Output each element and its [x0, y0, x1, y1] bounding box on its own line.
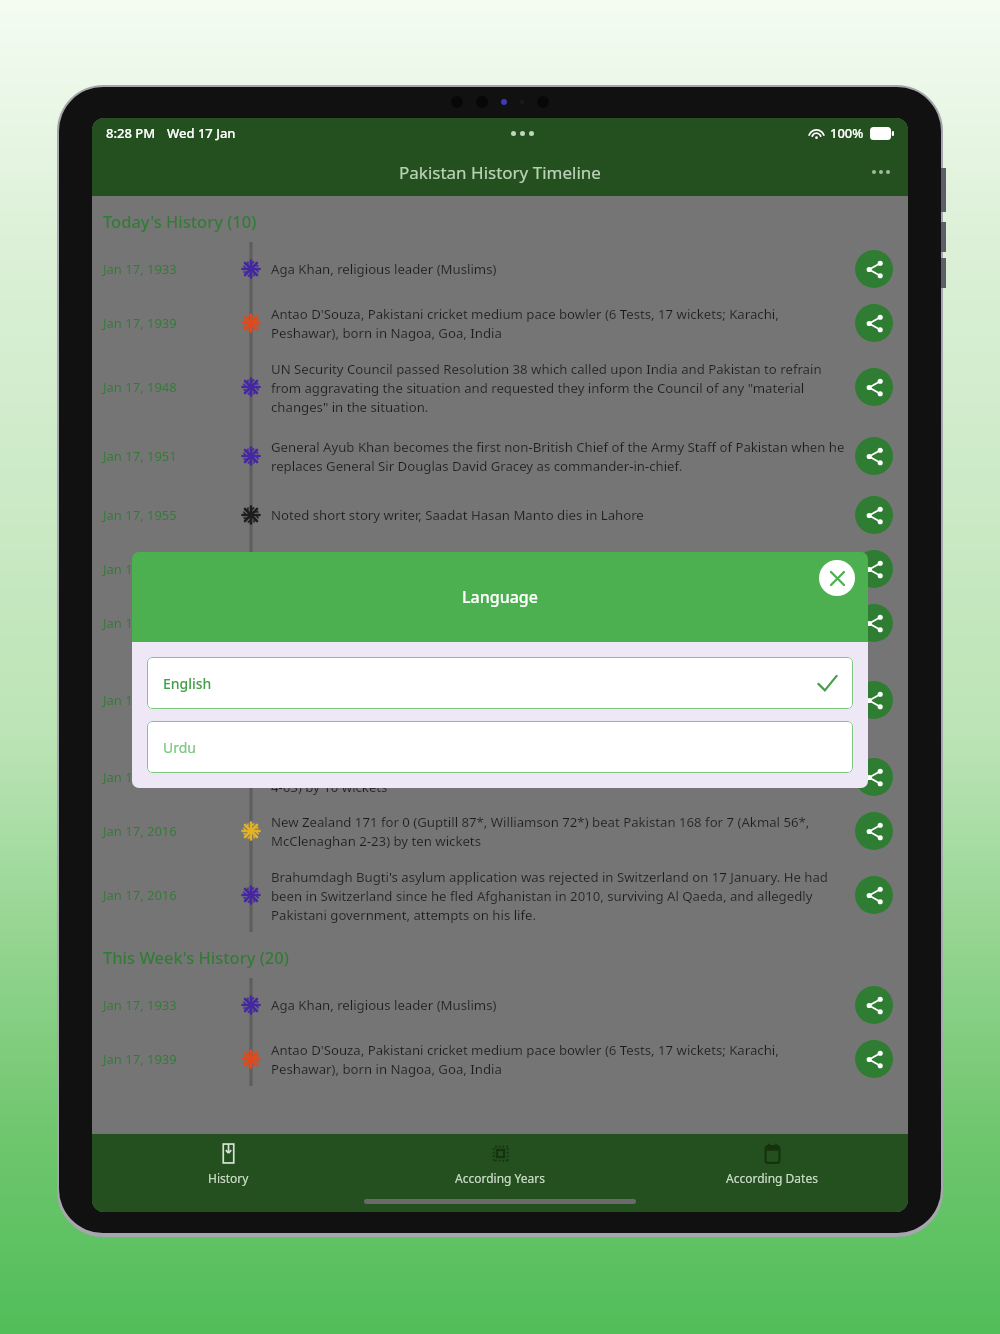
button[interactable]: Share	[855, 437, 893, 475]
staticText: Antao D'Souza, Pakistani cricket medium …	[271, 1041, 845, 1077]
staticText: 8:28 PM	[106, 124, 156, 142]
button[interactable]: Share	[855, 812, 893, 850]
staticText: English	[163, 674, 212, 693]
button[interactable]: Jan 17, 1939	[92, 296, 908, 350]
staticText: This Week's History (20)	[103, 946, 289, 968]
staticText: Jan 17, 1939	[103, 1050, 177, 1068]
button[interactable]: Share	[855, 368, 893, 406]
button[interactable]: History	[92, 1134, 364, 1190]
button[interactable]: Jan 17, 1948	[92, 350, 908, 424]
staticText: Noted short story writer, Saadat Hasan M…	[271, 506, 644, 524]
staticText: Jan 17, 1951	[103, 447, 177, 465]
button[interactable]: Share	[855, 304, 893, 342]
staticText: 100%	[830, 124, 864, 142]
staticText: Jan 17, 1933	[103, 996, 177, 1014]
button[interactable]: Share	[855, 876, 893, 914]
button[interactable]: Jan 17, 1933	[92, 978, 908, 1032]
button[interactable]: Share	[855, 1040, 893, 1078]
button[interactable]: Share	[855, 986, 893, 1024]
staticText: General Ayub Khan becomes the first non-…	[271, 438, 845, 474]
staticText: Brahumdagh Bugti's asylum application wa…	[271, 868, 845, 923]
staticText: Jan 17, 1939	[103, 314, 177, 332]
staticText: Language	[462, 586, 538, 608]
staticText: According Years	[455, 1170, 545, 1186]
staticText: Jan 17, 2016	[103, 822, 177, 840]
staticText: Jan 17, 1955	[103, 506, 177, 524]
button[interactable]: More options	[864, 162, 898, 182]
button[interactable]: Share	[855, 250, 893, 288]
staticText: Jan 17, 1948	[103, 378, 177, 396]
button[interactable]: Jan 17, 1995	[92, 650, 908, 750]
button[interactable]: Jan 17, 2012	[92, 750, 908, 804]
button[interactable]: Jan 17, 1951	[92, 424, 908, 488]
staticText: Aga Khan, religious leader (Muslims)	[271, 260, 497, 278]
button[interactable]: Close	[819, 560, 855, 596]
staticText: Urdu	[163, 738, 196, 757]
button[interactable]: Share	[855, 496, 893, 534]
button[interactable]: Jan 17, 2016	[92, 858, 908, 932]
button[interactable]: Jan 17, 1958	[92, 542, 908, 596]
staticText: History	[208, 1170, 249, 1186]
staticText: Swann 4-107) and 15 for 0 beat England 1…	[271, 759, 845, 795]
button[interactable]: Jan 17, 1933	[92, 242, 908, 296]
staticText: Today's History (10)	[103, 210, 257, 232]
button[interactable]: Jan 17, 1939	[92, 1032, 908, 1086]
staticText: Jan 17, 2016	[103, 886, 177, 904]
button[interactable]: Share	[855, 604, 893, 642]
button[interactable]: Share	[855, 550, 893, 588]
button[interactable]: Urdu	[147, 721, 853, 773]
button[interactable]: English	[147, 657, 853, 709]
button[interactable]: Jan 17, 1972	[92, 596, 908, 650]
staticText: UN Security Council passed Resolution 38…	[271, 360, 845, 415]
staticText: Antao D'Souza, Pakistani cricket medium …	[271, 305, 845, 341]
staticText: Aga Khan, religious leader (Muslims)	[271, 996, 497, 1014]
staticText: Jan 17, 1972	[103, 614, 177, 632]
staticText: Pakistan History Timeline	[399, 161, 601, 184]
staticText: Jan 17, 1995	[103, 691, 177, 709]
button[interactable]: Jan 17, 2016	[92, 804, 908, 858]
staticText: Jan 17, 2012	[103, 768, 177, 786]
button[interactable]: According Years	[364, 1134, 636, 1190]
staticText: Jan 17, 1958	[103, 560, 177, 578]
button[interactable]: According Dates	[636, 1134, 908, 1190]
button[interactable]: Share	[855, 758, 893, 796]
staticText: Pakistan history event of the year recor…	[271, 691, 651, 709]
staticText: Wed 17 Jan	[167, 124, 236, 142]
button[interactable]: Jan 17, 1955	[92, 488, 908, 542]
button[interactable]: Share	[855, 681, 893, 719]
staticText: New Zealand 171 for 0 (Guptill 87*, Will…	[271, 813, 845, 849]
staticText: Jan 17, 1933	[103, 260, 177, 278]
staticText: According Dates	[726, 1170, 818, 1186]
